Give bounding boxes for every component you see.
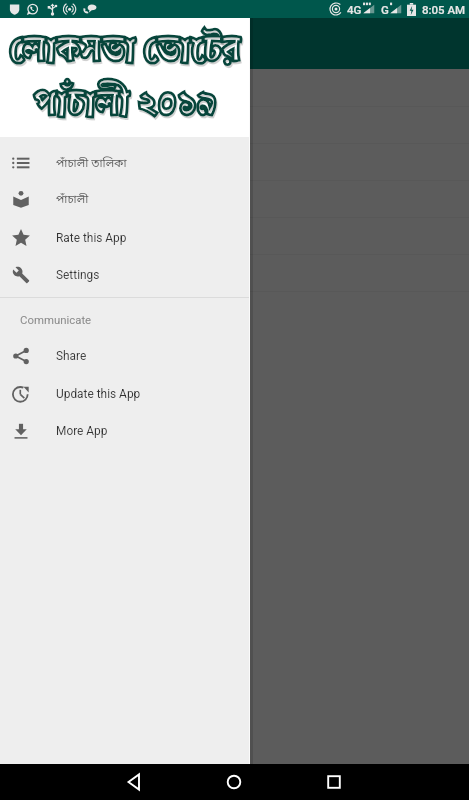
button[interactable]: Update this App <box>0 376 249 412</box>
button[interactable]: Share <box>0 338 249 374</box>
staticText: পাঁচালী ২০১৯ <box>33 74 217 132</box>
staticText: পাঁচালী <box>56 192 89 207</box>
staticText: Share <box>56 349 87 363</box>
staticText: Update this App <box>56 387 141 401</box>
staticText: পাঁচালী ২০১৯ <box>34 76 218 134</box>
button[interactable]: পাঁচালী <box>0 181 249 217</box>
staticText: 4G <box>347 3 362 16</box>
staticText: Rate this App <box>56 231 127 245</box>
button[interactable]: Back <box>115 764 155 800</box>
button[interactable]: Rate this App <box>0 220 249 256</box>
button[interactable]: Home <box>214 764 254 800</box>
button[interactable]: Settings <box>0 257 249 293</box>
staticText: 8:05 AM <box>422 3 466 16</box>
staticText: লোকসভা ভোটের <box>9 20 241 78</box>
staticText: লোকসভা ভোটের <box>10 22 242 80</box>
staticText: Settings <box>56 268 100 282</box>
button[interactable]: Recent apps <box>314 764 354 800</box>
button[interactable]: More App <box>0 413 249 449</box>
staticText: G <box>381 3 389 16</box>
staticText: পাঁচালী তালিকা <box>56 156 127 171</box>
button[interactable]: পাঁচালী তালিকা <box>0 145 249 181</box>
staticText: More App <box>56 424 108 438</box>
staticText: Communicate <box>20 313 92 326</box>
